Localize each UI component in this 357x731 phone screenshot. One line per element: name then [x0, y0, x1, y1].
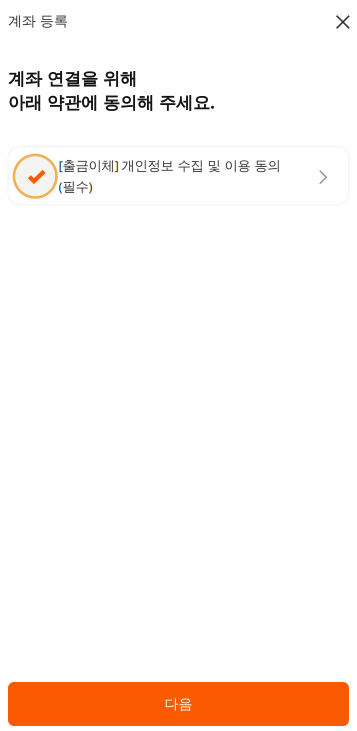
staticText: 아래 약관에 동의해 주세요. [8, 90, 215, 114]
button[interactable]: [출금이체] 개인정보 수집 및 이용 동의 (필수) [8, 147, 349, 205]
staticText: [출금이체] 개인정보 수집 및 이용 동의 (필수) [58, 156, 280, 195]
staticText: 계좌 등록 [8, 12, 68, 30]
button[interactable]: 다음 [8, 682, 349, 726]
staticText: 계좌 연결을 위해 [8, 68, 137, 89]
button[interactable]: 닫기 [326, 4, 357, 38]
staticText: 다음 [164, 695, 192, 713]
